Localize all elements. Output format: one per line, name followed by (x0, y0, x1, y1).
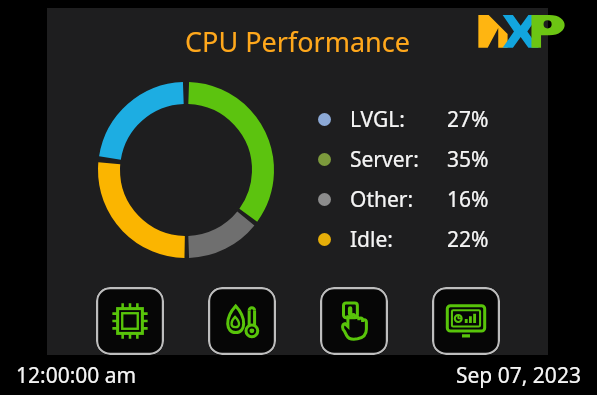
button[interactable]: Touch (320, 287, 388, 355)
other: NXP logo (477, 12, 567, 50)
staticText: Sep 07, 2023 (456, 361, 581, 390)
staticText: Server: (350, 145, 419, 174)
staticText: 35% (447, 145, 489, 174)
staticText: CPU Performance (185, 23, 410, 60)
staticText: Other: (350, 185, 414, 214)
button[interactable]: LVGL: (318, 99, 508, 139)
button[interactable]: Temperature and humidity (208, 287, 276, 355)
button[interactable]: Other: (318, 179, 508, 219)
button[interactable]: Server: (318, 139, 508, 179)
staticText: 12:00:00 am (16, 361, 137, 390)
button[interactable]: Dashboard (432, 287, 500, 355)
staticText: 22% (447, 225, 489, 254)
button[interactable]: CPU (96, 287, 164, 355)
staticText: 27% (447, 105, 489, 134)
staticText: Idle: (350, 225, 393, 254)
button[interactable]: Idle: (318, 219, 508, 259)
staticText: 16% (447, 185, 489, 214)
staticText: LVGL: (350, 105, 405, 134)
